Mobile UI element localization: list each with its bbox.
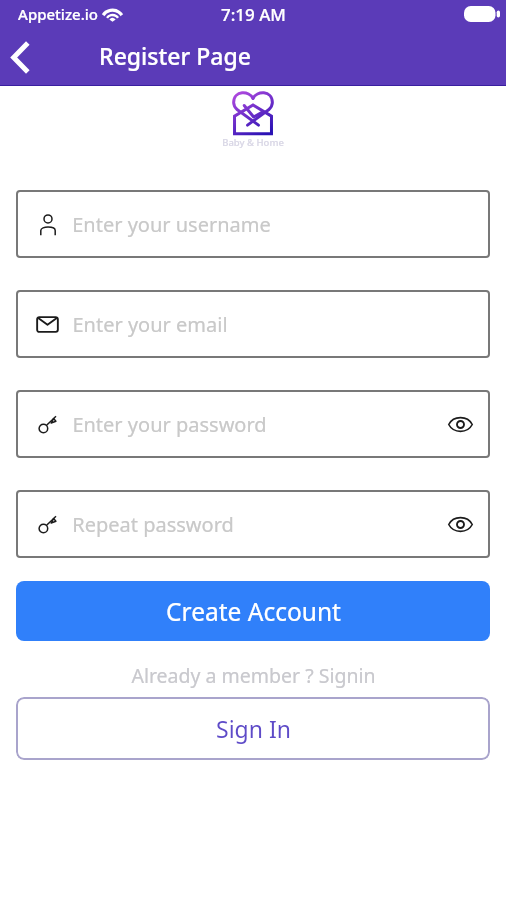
button[interactable]: Show password — [432, 490, 488, 558]
button[interactable]: Sign In — [16, 697, 490, 760]
button[interactable]: Enter your email — [16, 290, 490, 358]
staticText: Enter your username — [72, 211, 271, 238]
staticText: Create Account — [166, 595, 341, 628]
button[interactable]: Repeat password — [16, 490, 490, 558]
staticText: Register Page — [99, 40, 251, 71]
staticText: Already a member ? Signin — [131, 662, 376, 689]
staticText: Enter your password — [72, 411, 267, 438]
button[interactable]: Create Account — [16, 581, 490, 641]
button[interactable]: Back — [0, 33, 44, 81]
button[interactable]: Show password — [432, 390, 488, 458]
staticText: Sign In — [216, 713, 291, 744]
staticText: 7:19 AM — [221, 3, 286, 26]
staticText: Baby & Home — [222, 136, 284, 149]
staticText: Appetize.io — [18, 4, 98, 24]
button[interactable]: Enter your password — [16, 390, 490, 458]
staticText: Repeat password — [72, 511, 234, 538]
button[interactable]: Enter your username — [16, 190, 490, 258]
staticText: Enter your email — [72, 311, 228, 338]
